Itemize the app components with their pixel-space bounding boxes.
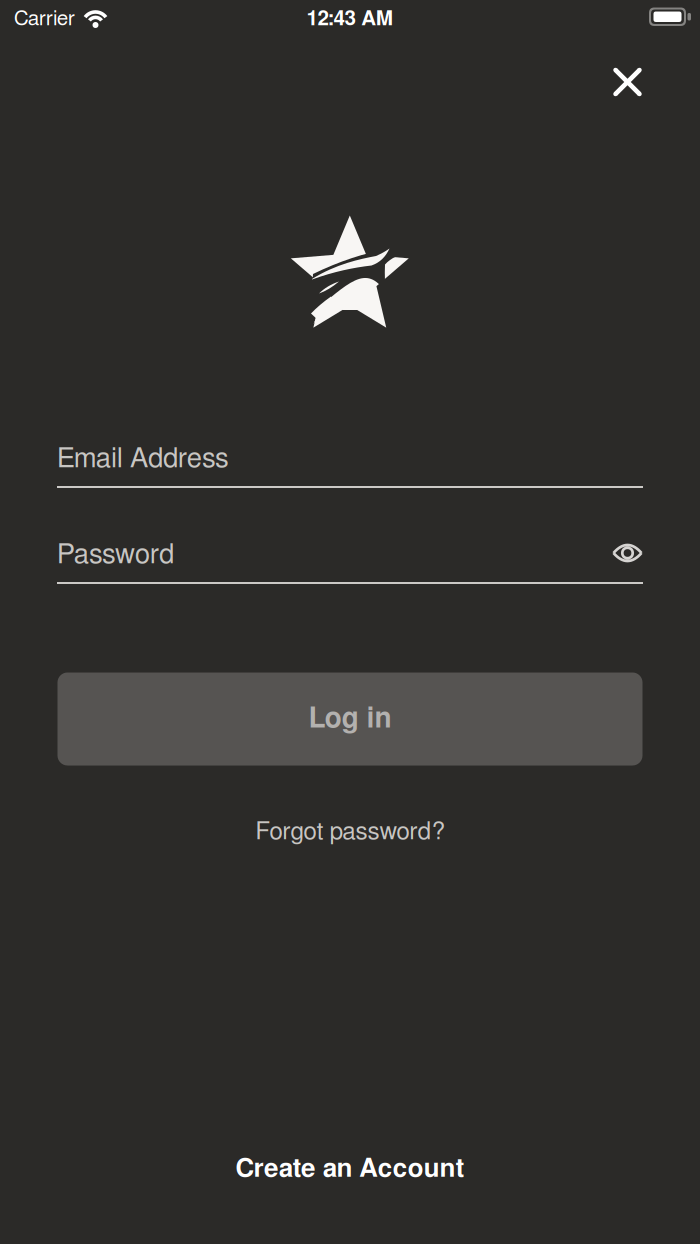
staticText: Email Address <box>57 445 229 473</box>
staticText: Forgot password? <box>255 820 444 844</box>
staticText: 12:43 AM <box>306 9 393 29</box>
staticText: Password <box>57 541 174 569</box>
staticText: Create an Account <box>235 1156 464 1182</box>
staticText: Carrier <box>14 9 75 29</box>
staticText: Log in <box>308 705 391 733</box>
